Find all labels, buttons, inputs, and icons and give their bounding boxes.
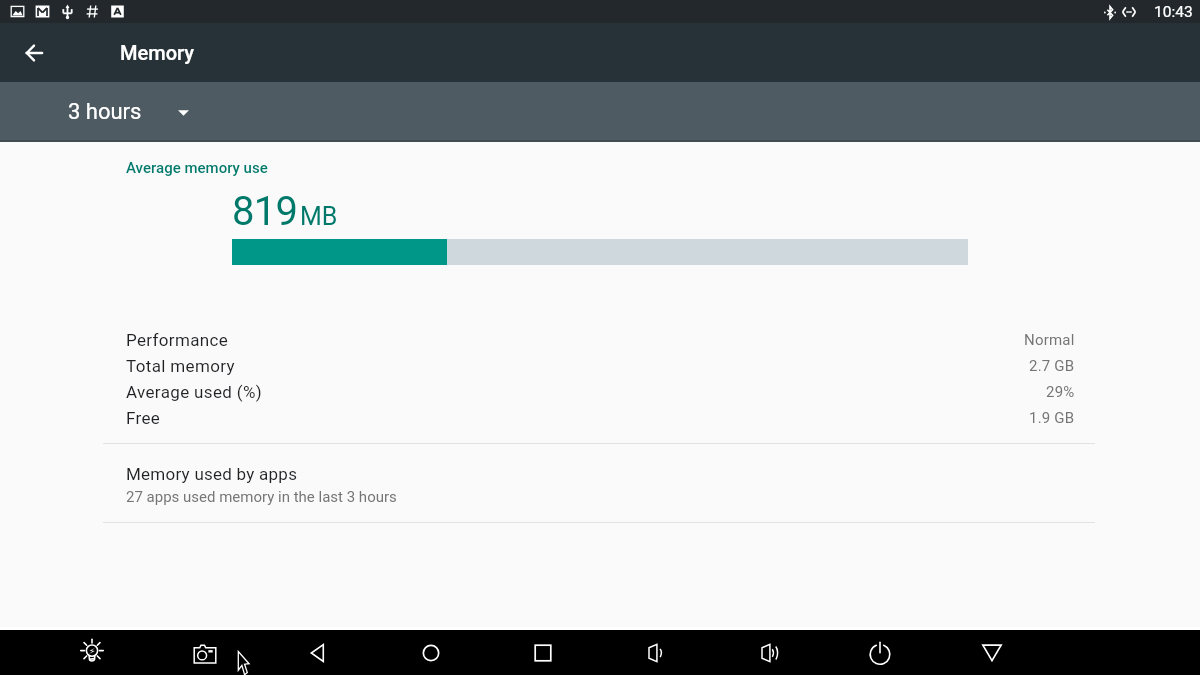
button[interactable]: Home [409, 630, 453, 675]
button[interactable]: Recent apps [521, 630, 565, 675]
button[interactable]: Volume down [633, 630, 677, 675]
button[interactable]: Memory used by apps [0, 444, 1200, 522]
staticText: 2.7 GB [1029, 357, 1075, 375]
staticText: Normal [1024, 331, 1075, 349]
button[interactable]: Power [858, 630, 902, 675]
button[interactable]: Hide navigation bar [970, 630, 1014, 675]
staticText: 1.9 GB [1029, 409, 1075, 427]
staticText: 819 [232, 188, 298, 235]
button[interactable]: Volume up [746, 630, 790, 675]
button[interactable]: Navigate up [10, 29, 58, 77]
staticText: Free [126, 408, 161, 428]
button[interactable]: Back [296, 630, 340, 675]
staticText: MB [300, 202, 338, 231]
staticText: 10:43 [1154, 3, 1193, 21]
staticText: Memory used by apps [126, 464, 298, 484]
staticText: Total memory [126, 356, 235, 376]
button[interactable]: 3 hours [56, 99, 201, 125]
staticText: Memory [120, 41, 194, 64]
staticText: 27 apps used memory in the last 3 hours [126, 488, 397, 506]
staticText: 29% [1046, 383, 1075, 401]
button[interactable]: Brightness [70, 630, 114, 675]
staticText: 3 hours [68, 99, 142, 125]
staticText: Average used (%) [126, 382, 263, 402]
button[interactable]: Screenshot [183, 630, 227, 675]
staticText: Average memory use [126, 159, 268, 177]
staticText: Performance [126, 330, 229, 350]
